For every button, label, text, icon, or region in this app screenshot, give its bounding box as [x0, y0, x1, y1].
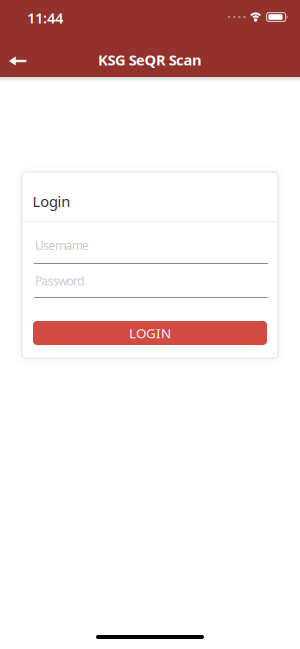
staticText: KSG SeQR Scan: [98, 50, 202, 69]
button[interactable]: Username: [34, 230, 268, 264]
button[interactable]: Back: [0, 46, 34, 75]
staticText: Password: [35, 273, 84, 289]
staticText: LOGIN: [129, 324, 171, 342]
button[interactable]: Password: [34, 266, 268, 298]
button[interactable]: LOGIN: [33, 321, 267, 345]
staticText: Login: [32, 191, 70, 211]
staticText: Username: [35, 237, 89, 253]
staticText: 11:44: [27, 8, 63, 27]
